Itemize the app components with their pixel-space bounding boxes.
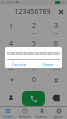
button[interactable]: Ajustes (50, 107, 67, 119)
button[interactable]: # (45, 72, 67, 90)
button[interactable]: 0 (23, 72, 45, 90)
staticText: PQRS (8, 67, 15, 70)
staticText: DEF (54, 31, 59, 34)
button[interactable]: 8 (23, 54, 45, 72)
button[interactable]: 7 (0, 54, 23, 72)
staticText: 3 (54, 21, 59, 31)
staticText: Ajustes (54, 115, 63, 119)
staticText: 87% (61, 1, 66, 4)
staticText: Contactos (35, 115, 48, 119)
button[interactable]: Contactos (33, 107, 50, 119)
staticText: ABC (32, 31, 37, 34)
staticText: * (10, 76, 14, 86)
button[interactable]: 5 (23, 36, 45, 54)
staticText: Teclado (3, 115, 13, 119)
button[interactable]: Cancelar (5, 60, 33, 68)
staticText: 8 (32, 57, 37, 67)
staticText: 2 (32, 21, 37, 31)
button[interactable]: Add contact (0, 90, 22, 106)
staticText: WXYZ (53, 67, 60, 70)
button[interactable]: Call (22, 91, 45, 106)
staticText: Llamar (42, 62, 54, 67)
staticText: 6 (54, 39, 59, 49)
button[interactable]: Teclado (0, 107, 16, 119)
staticText: Vodafone (5, 1, 15, 4)
button[interactable]: 4 (0, 36, 23, 54)
button[interactable]: Recientes (16, 107, 33, 119)
button[interactable]: 9 (45, 54, 67, 72)
button[interactable]: 1 (0, 18, 23, 36)
staticText: 00000000000000000000000000 (7, 51, 60, 57)
staticText: TUV (32, 67, 37, 70)
button[interactable]: 6 (45, 36, 67, 54)
staticText: 0 (32, 75, 37, 85)
staticText: 1 (9, 22, 14, 32)
button[interactable]: 2 (23, 18, 45, 36)
button[interactable]: * (0, 72, 23, 90)
staticText: # (54, 76, 59, 86)
button[interactable]: 3 (45, 18, 67, 36)
staticText: + (34, 85, 36, 88)
staticText: Cancelar (12, 62, 27, 67)
staticText: 7 (9, 57, 14, 67)
button[interactable]: Backspace (45, 90, 67, 106)
staticText: Recientes (19, 115, 31, 119)
staticText: 4 (9, 39, 14, 49)
staticText: 123456789 (11, 7, 54, 17)
button[interactable]: Llamar (33, 60, 62, 68)
button[interactable]: Clear (54, 5, 67, 18)
staticText: 5 (32, 39, 37, 49)
staticText: 9 (54, 57, 59, 67)
